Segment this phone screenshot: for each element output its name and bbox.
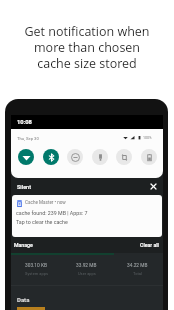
button[interactable]: Clear all xyxy=(137,239,162,251)
staticText: 303.10 KB xyxy=(25,263,47,269)
staticText: cache found: 239 MB | Apps: 7 xyxy=(16,210,88,216)
staticText: System apps xyxy=(25,271,48,276)
staticText: Get notification when more than chosen c… xyxy=(0,23,174,72)
staticText: Clear all xyxy=(140,242,159,248)
button[interactable]: Bluetooth xyxy=(43,149,59,165)
button[interactable]: Wi-Fi xyxy=(18,149,34,165)
staticText: 34.22 MB xyxy=(127,263,148,269)
button[interactable]: Manage xyxy=(12,239,35,251)
staticText: Tap to clear the cache xyxy=(16,219,68,225)
button[interactable]: Flashlight xyxy=(92,149,108,165)
staticText: 33.92 MB xyxy=(76,263,97,269)
button[interactable]: Battery saver xyxy=(141,149,157,165)
staticText: Silent xyxy=(17,184,31,190)
staticText: 10:08 xyxy=(17,119,32,126)
button[interactable]: Do not disturb xyxy=(67,149,83,165)
staticText: Data xyxy=(17,296,30,303)
staticText: Cache Master • now xyxy=(25,200,66,205)
button[interactable]: Close xyxy=(148,181,159,192)
staticText: Thu, Sep 30 xyxy=(17,136,39,141)
staticText: 100% xyxy=(143,136,152,140)
staticText: Total xyxy=(133,271,142,276)
button[interactable]: Cache Master • now xyxy=(12,195,162,237)
button[interactable]: Auto-rotate xyxy=(116,149,132,165)
staticText: User apps xyxy=(78,271,96,276)
staticText: Manage xyxy=(14,242,33,248)
